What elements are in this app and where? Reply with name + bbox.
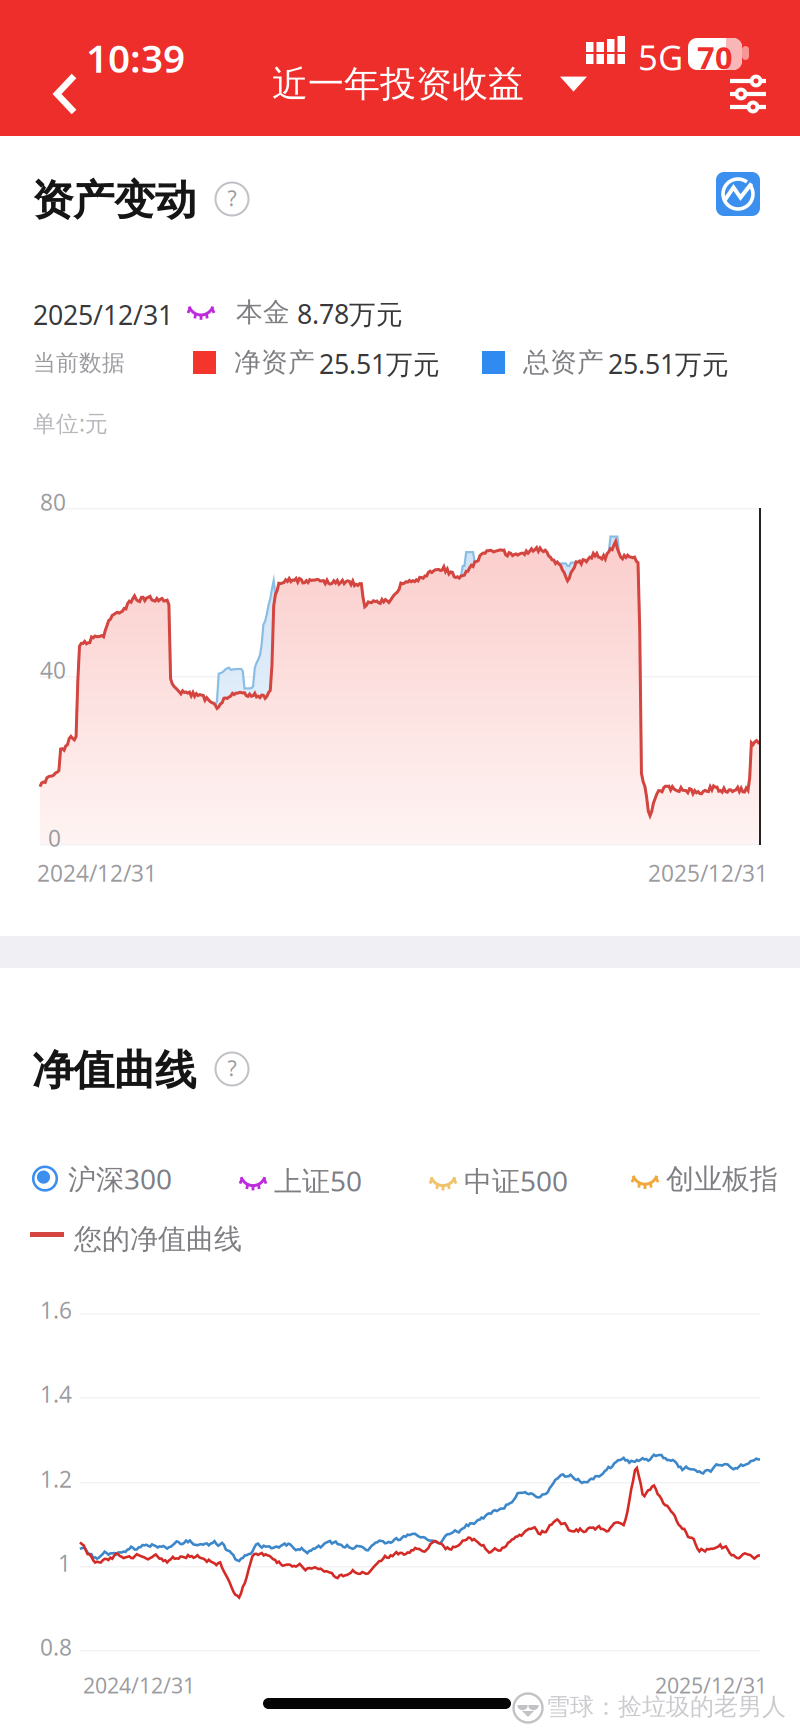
staticText: 2024/12/31 — [83, 1671, 195, 1699]
staticText: 近一年投资收益 — [272, 62, 524, 106]
staticText: 40 — [40, 655, 66, 685]
staticText: 1.2 — [40, 1464, 72, 1494]
button[interactable]: 创业板指 — [630, 1162, 778, 1196]
staticText: 5G — [638, 34, 683, 80]
staticText: ? — [227, 184, 236, 212]
staticText: 1 — [58, 1548, 71, 1578]
staticText: 单位:元 — [33, 408, 108, 438]
staticText: 2024/12/31 — [37, 858, 157, 888]
staticText: 净值曲线 — [32, 1045, 196, 1096]
staticText: 当前数据 — [33, 349, 125, 377]
staticText: 沪深300 — [68, 1160, 172, 1197]
staticText: 8.78万元 — [297, 296, 403, 331]
staticText: 中证500 — [464, 1162, 568, 1199]
staticText: 1.6 — [40, 1295, 72, 1325]
staticText: 2025/12/31 — [648, 858, 768, 888]
button[interactable]: 沪深300 — [32, 1160, 172, 1197]
button[interactable]: 近一年投资收益 — [272, 62, 587, 106]
staticText: ? — [227, 1054, 236, 1082]
staticText: 10:39 — [86, 32, 185, 83]
staticText: 您的净值曲线 — [74, 1222, 242, 1256]
staticText: 80 — [40, 487, 66, 517]
staticText: 雪球：捡垃圾的老男人 — [546, 1692, 786, 1721]
button[interactable]: Back — [44, 66, 100, 122]
staticText: 25.51万元 — [319, 346, 440, 381]
staticText: 上证50 — [274, 1162, 362, 1199]
staticText: 本金 — [236, 296, 290, 329]
staticText: 0 — [48, 823, 61, 853]
staticText: 1.4 — [40, 1379, 72, 1409]
button[interactable]: 中证500 — [428, 1162, 568, 1199]
staticText: 25.51万元 — [608, 346, 729, 381]
button[interactable]: Settings — [720, 66, 776, 122]
staticText: 资产变动 — [32, 175, 196, 226]
staticText: 总资产 — [523, 346, 604, 379]
button[interactable]: 上证50 — [238, 1162, 362, 1199]
staticText: 净资产 — [234, 346, 315, 379]
staticText: 创业板指 — [666, 1162, 778, 1196]
staticText: 70 — [697, 37, 733, 78]
button[interactable]: Chart tool — [716, 172, 760, 216]
staticText: 2025/12/31 — [655, 1671, 767, 1699]
staticText: 0.8 — [40, 1632, 72, 1662]
staticText: 2025/12/31 — [33, 297, 173, 332]
